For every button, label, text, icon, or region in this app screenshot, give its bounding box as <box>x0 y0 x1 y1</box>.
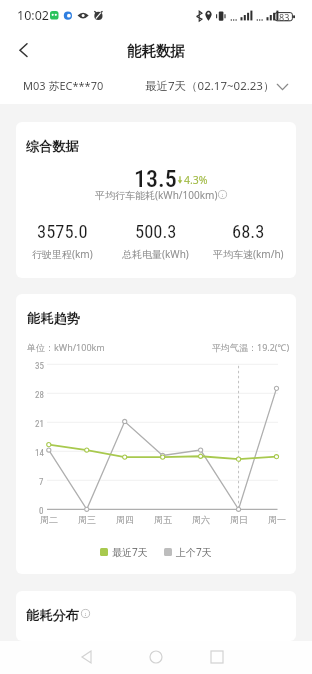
staticText: 周六 <box>192 514 210 525</box>
staticText: 周三 <box>78 514 96 525</box>
staticText: 7 <box>39 477 44 488</box>
staticText: 行驶里程(km) <box>32 247 93 261</box>
staticText: 周日 <box>230 514 248 525</box>
staticText: 10:02 <box>17 7 49 24</box>
staticText: 14 <box>35 448 44 459</box>
staticText: 上个7天 <box>176 545 212 559</box>
staticText: 单位：kWh/100km <box>27 341 105 353</box>
staticText: 最近7天 <box>112 545 148 559</box>
staticText: 周四 <box>116 514 134 525</box>
staticText: 能耗数据 <box>127 42 185 60</box>
button[interactable]: Back <box>8 38 32 62</box>
staticText: 总耗电量(kWh) <box>122 247 189 261</box>
button[interactable]: Recents <box>205 645 229 669</box>
staticText: 35 <box>35 361 44 372</box>
staticText: 68.3 <box>232 221 265 243</box>
staticText: 83 <box>279 11 290 23</box>
button[interactable]: 能耗分布 <box>16 591 296 641</box>
button[interactable]: 能耗趋势 <box>16 294 296 574</box>
staticText: 最近7天（02.17~02.23） <box>145 78 275 94</box>
button[interactable]: Back <box>75 645 99 669</box>
staticText: 周二 <box>40 514 58 525</box>
staticText: 500.3 <box>135 221 177 243</box>
staticText: 4.3% <box>184 173 208 187</box>
staticText: 能耗趋势 <box>27 310 80 327</box>
staticText: 13.5 <box>134 165 177 193</box>
button[interactable]: Home <box>144 645 168 669</box>
staticText: 平均车速(km/h) <box>213 247 284 261</box>
staticText: 平均气温：19.2(℃) <box>212 341 290 353</box>
staticText: 3575.0 <box>37 221 88 243</box>
staticText: 21 <box>35 419 44 430</box>
staticText: 0 <box>39 506 44 517</box>
staticText: 平均行车能耗(kWh/100km) <box>95 188 218 202</box>
button[interactable]: 最近7天（02.17~02.23） <box>140 72 292 100</box>
staticText: 综合数据 <box>26 138 79 155</box>
staticText: 28 <box>35 390 44 401</box>
staticText: 能耗分布 <box>26 607 79 624</box>
staticText: 周一 <box>268 514 286 525</box>
button[interactable]: 综合数据 <box>16 122 296 278</box>
staticText: 周五 <box>154 514 172 525</box>
staticText: M03 苏EC***70 <box>23 78 104 93</box>
